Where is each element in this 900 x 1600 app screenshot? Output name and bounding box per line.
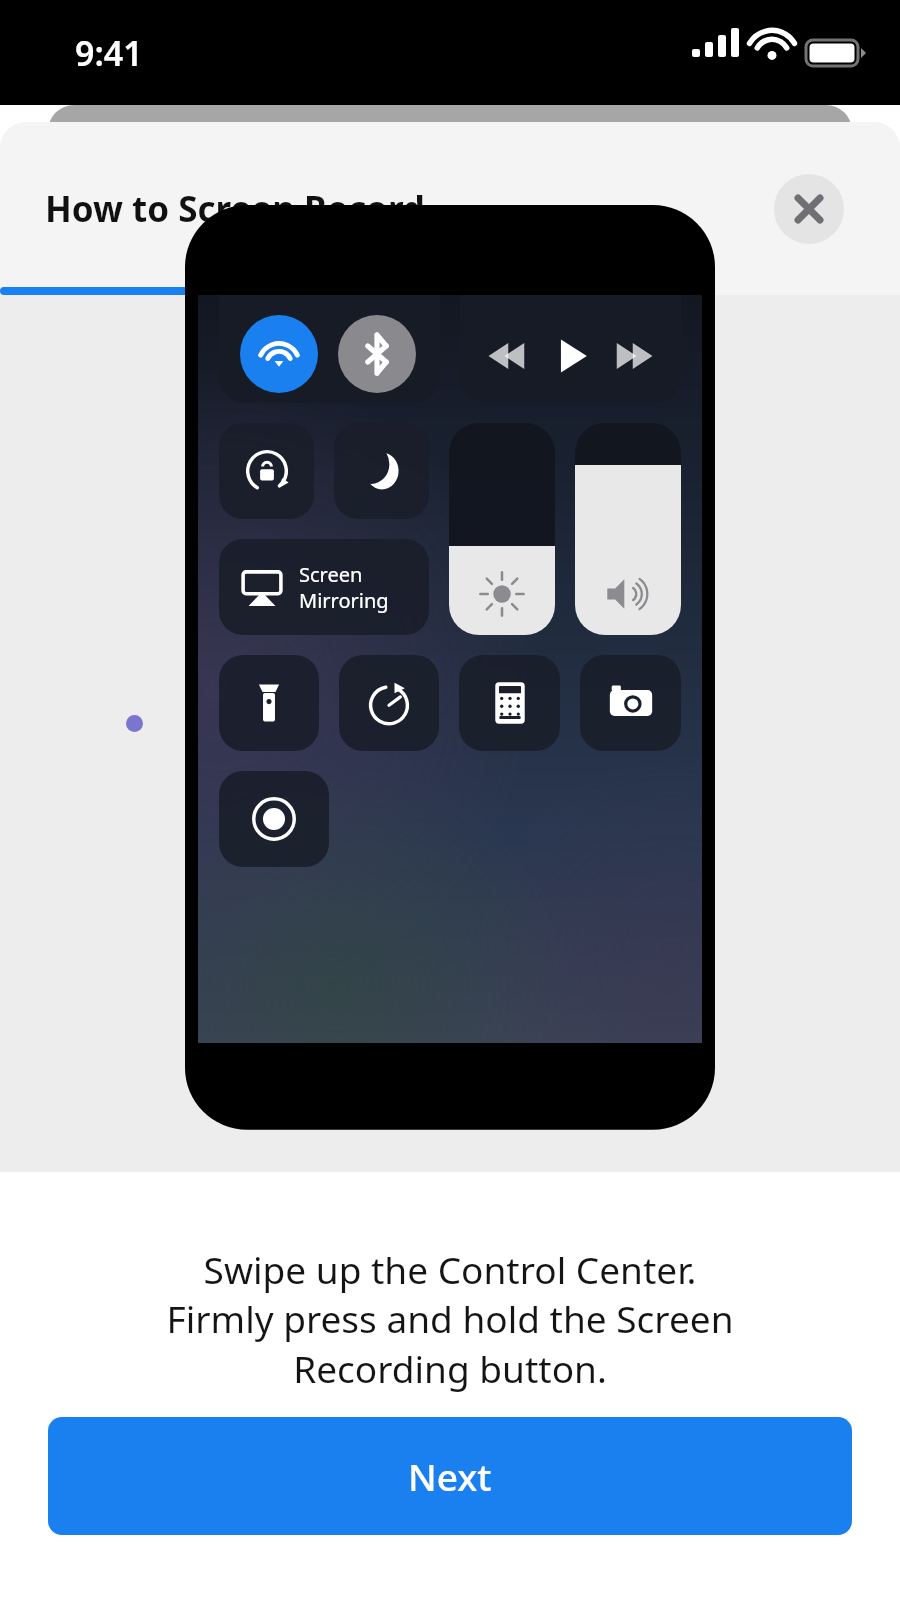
button[interactable]: Calculator <box>459 655 560 751</box>
button[interactable]: Timer <box>339 655 439 751</box>
button[interactable]: Flashlight <box>219 655 319 751</box>
staticText: Next <box>408 1451 492 1501</box>
button[interactable]: Camera <box>580 655 681 751</box>
button[interactable]: Rotation Lock <box>219 423 314 519</box>
staticText: 9:41 <box>75 30 143 76</box>
button[interactable]: Next <box>48 1417 852 1535</box>
button[interactable]: Connectivity <box>219 295 440 403</box>
button[interactable]: Now playing <box>460 295 681 403</box>
staticText: Swipe up the Control Center. Firmly pres… <box>40 1244 860 1394</box>
button[interactable]: Brightness <box>449 423 555 635</box>
button[interactable]: Volume <box>575 423 681 635</box>
button[interactable]: Do Not Disturb <box>334 423 429 519</box>
button[interactable]: Screen Recording <box>219 771 329 867</box>
button[interactable]: Screen Mirroring <box>219 539 429 635</box>
staticText: How to Screen Record <box>45 185 425 233</box>
button[interactable]: Close <box>774 174 844 244</box>
staticText: Screen Mirroring <box>299 561 389 613</box>
